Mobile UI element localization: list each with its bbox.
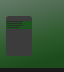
button[interactable]	[6, 16, 32, 56]
